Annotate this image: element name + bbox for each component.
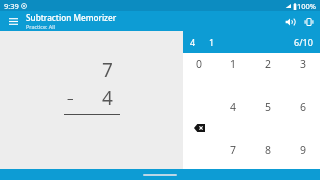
staticText: Practice: All bbox=[26, 23, 56, 30]
staticText: 6/10 bbox=[294, 36, 313, 48]
staticText: 7 bbox=[102, 57, 113, 83]
button[interactable]: Vibrate bbox=[299, 12, 318, 31]
button[interactable]: 8 bbox=[254, 139, 282, 161]
staticText: 4 bbox=[230, 100, 237, 114]
staticText: 1 bbox=[230, 57, 237, 71]
staticText: 4 bbox=[102, 85, 113, 111]
button[interactable]: 2 bbox=[254, 53, 282, 75]
staticText: 9 bbox=[300, 143, 307, 157]
staticText: 9:39 bbox=[4, 1, 19, 11]
staticText: 100% bbox=[297, 1, 317, 11]
button[interactable]: 9 bbox=[289, 139, 317, 161]
button[interactable]: 5 bbox=[254, 96, 282, 118]
staticText: 4 bbox=[190, 36, 196, 48]
staticText: 5 bbox=[265, 100, 272, 114]
button[interactable]: Backspace bbox=[188, 120, 210, 136]
button[interactable]: 1 bbox=[219, 53, 247, 75]
staticText: 2 bbox=[265, 57, 272, 71]
button[interactable]: 4 bbox=[219, 96, 247, 118]
staticText: Subtraction Memorizer bbox=[26, 12, 117, 23]
staticText: 0 bbox=[196, 57, 203, 71]
button[interactable]: Home bbox=[143, 174, 177, 176]
button[interactable]: Open navigation drawer bbox=[5, 13, 22, 30]
staticText: 6 bbox=[300, 100, 307, 114]
button[interactable]: Sound bbox=[280, 12, 299, 31]
button[interactable]: 3 bbox=[289, 53, 317, 75]
staticText: 8 bbox=[265, 143, 272, 157]
button[interactable]: 7 bbox=[219, 139, 247, 161]
button[interactable]: 0 bbox=[185, 53, 213, 75]
staticText: 1 bbox=[209, 36, 215, 48]
staticText: – bbox=[67, 89, 74, 107]
staticText: 7 bbox=[230, 143, 237, 157]
button[interactable]: 6 bbox=[289, 96, 317, 118]
staticText: 3 bbox=[300, 57, 307, 71]
